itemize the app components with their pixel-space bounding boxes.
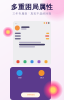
staticText: 9:41: [14, 22, 17, 24]
staticText: 立即查看专属方案: [26, 94, 34, 96]
staticText: 专属礼遇: [39, 77, 43, 79]
staticText: 三年专属权 · 真实不虚的回报: [12, 12, 51, 15]
button[interactable]: 立即查看专属方案: [21, 92, 40, 97]
staticText: 多重困局属性: [11, 3, 53, 11]
staticText: 全球服务: [17, 77, 21, 79]
